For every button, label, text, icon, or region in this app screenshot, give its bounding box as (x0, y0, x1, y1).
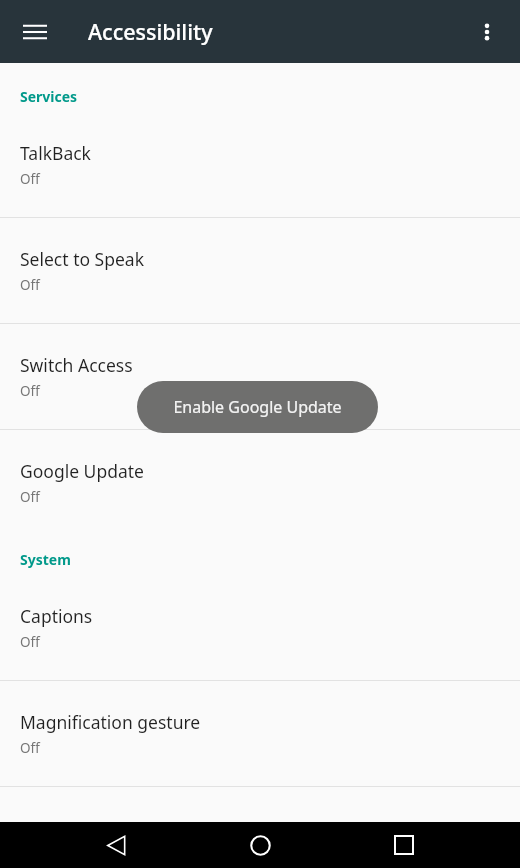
button[interactable]: Select to Speak (0, 218, 520, 323)
staticText: Off (20, 170, 40, 188)
button[interactable]: Google Update (0, 430, 520, 506)
button[interactable]: Open navigation drawer (12, 9, 58, 55)
staticText: Off (20, 739, 40, 757)
staticText: Off (20, 488, 40, 506)
button[interactable]: Back (88, 822, 144, 868)
staticText: Magnification gesture (20, 710, 201, 734)
staticText: Switch Access (20, 353, 133, 377)
button[interactable]: Switch Access (0, 324, 520, 429)
staticText: System (20, 550, 71, 569)
staticText: Off (20, 276, 40, 294)
staticText: Services (20, 87, 78, 106)
staticText: Enable Google Update (173, 396, 342, 418)
button[interactable]: Magnification gesture (0, 681, 520, 786)
staticText: Select to Speak (20, 247, 144, 271)
staticText: TalkBack (20, 141, 91, 165)
staticText: Captions (20, 604, 93, 628)
button[interactable]: Captions (0, 569, 520, 680)
staticText: Off (20, 633, 40, 651)
staticText: Off (20, 382, 40, 400)
staticText: Accessibility (88, 17, 213, 46)
button[interactable]: Home (232, 822, 288, 868)
button[interactable]: More options (464, 9, 510, 55)
button[interactable]: TalkBack (0, 106, 520, 217)
button[interactable]: Recent apps (376, 822, 432, 868)
staticText: Google Update (20, 459, 144, 483)
